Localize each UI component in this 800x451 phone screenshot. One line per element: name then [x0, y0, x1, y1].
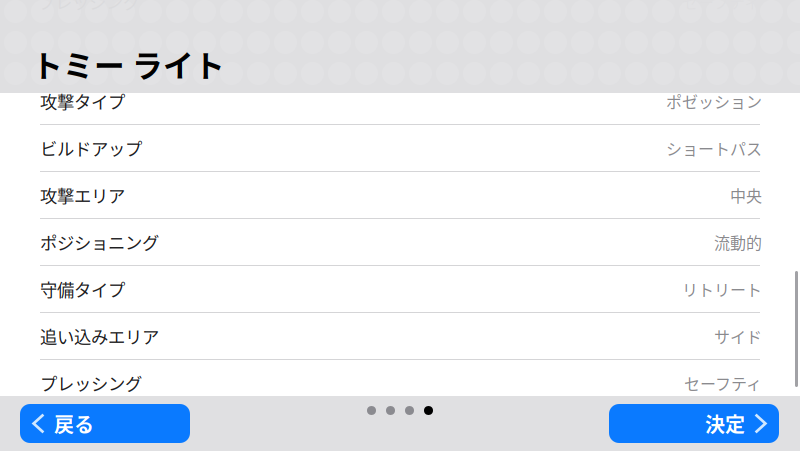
staticText: 戻る — [54, 409, 94, 438]
staticText: 守備タイプ — [40, 276, 125, 302]
staticText: サイド — [714, 324, 762, 348]
staticText: プレッシング — [40, 370, 142, 396]
staticText: 中央 — [730, 183, 762, 207]
button[interactable]: ビルドアップ — [0, 125, 800, 172]
button[interactable]: 守備タイプ — [0, 266, 800, 313]
button[interactable]: 戻る — [20, 404, 190, 443]
button[interactable]: 攻撃タイプ — [0, 78, 800, 125]
staticText: ビルドアップ — [40, 135, 142, 161]
staticText: 攻撃エリア — [40, 182, 125, 208]
staticText: ポジショニング — [40, 229, 159, 255]
staticText: 攻撃タイプ — [40, 88, 125, 114]
staticText: トミー ライト — [32, 42, 225, 86]
button[interactable]: 決定 — [609, 404, 779, 443]
button[interactable]: 攻撃エリア — [0, 172, 800, 219]
staticText: 流動的 — [714, 230, 762, 254]
button[interactable]: 追い込みエリア — [0, 313, 800, 360]
staticText: 決定 — [705, 409, 745, 438]
staticText: ポゼッション — [666, 89, 762, 113]
staticText: セーフティ — [684, 371, 762, 395]
staticText: リトリート — [682, 277, 762, 301]
button[interactable]: ポジショニング — [0, 219, 800, 266]
staticText: 追い込みエリア — [40, 323, 159, 349]
staticText: ショートパス — [666, 136, 762, 160]
button[interactable]: プレッシング — [0, 360, 800, 407]
